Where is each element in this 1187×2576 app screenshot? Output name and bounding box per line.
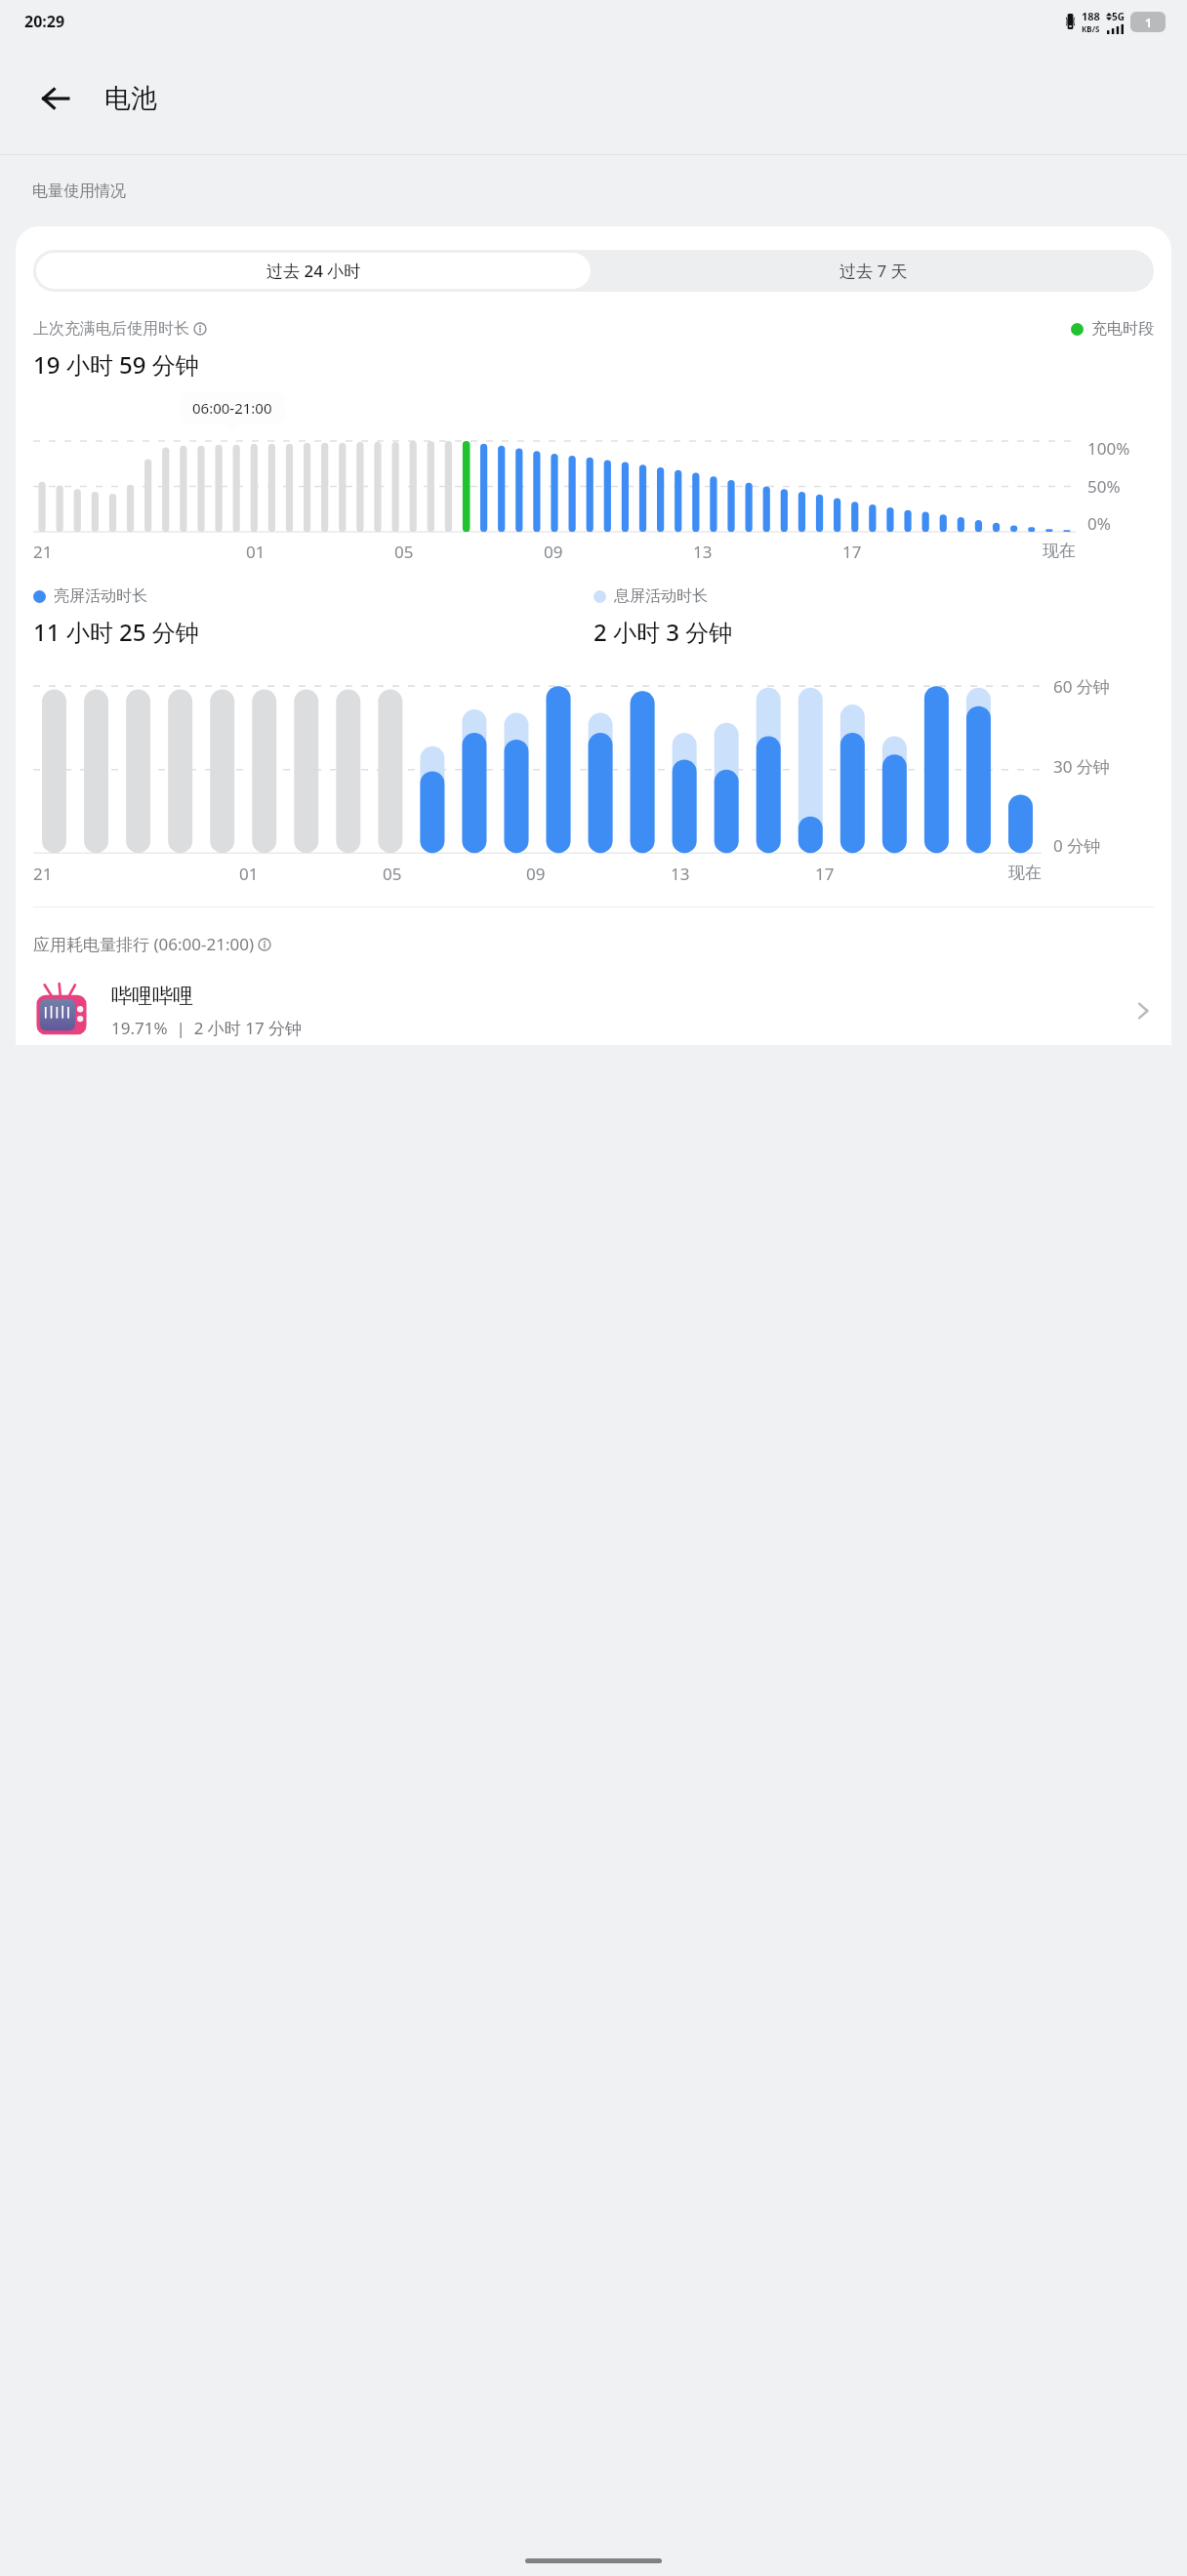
staticText: 现在 (1043, 541, 1076, 561)
staticText: 13 (693, 541, 713, 563)
button[interactable]: 过去 24 小时 (36, 253, 591, 289)
staticText: 应用耗电量排行 (06:00-21:00) (33, 933, 254, 955)
staticText: 19 小时 59 分钟 (33, 348, 199, 381)
staticText: 上次充满电后使用时长 (33, 319, 189, 339)
staticText: 0 分钟 (1053, 834, 1101, 857)
staticText: 过去 7 天 (839, 260, 908, 282)
button[interactable]: Back (27, 70, 84, 127)
staticText: 哔哩哔哩 (111, 984, 193, 1009)
staticText: 21 (33, 541, 53, 563)
staticText: 2 小时 3 分钟 (593, 616, 733, 648)
staticText: 30 分钟 (1053, 755, 1110, 778)
staticText: 5G (1112, 10, 1125, 23)
staticText: 电量使用情况 (32, 181, 126, 201)
staticText: 09 (544, 541, 563, 563)
staticText: 05 (383, 863, 402, 885)
staticText: 50% (1087, 475, 1121, 498)
staticText: 17 (815, 863, 835, 885)
staticText: 0% (1087, 512, 1111, 535)
staticText: 亮屏活动时长 (54, 586, 147, 606)
staticText: 11 小时 25 分钟 (33, 616, 199, 648)
staticText: 息屏活动时长 (614, 586, 708, 606)
staticText: 21 (33, 863, 53, 885)
staticText: 1 (1145, 15, 1152, 30)
staticText: 188 (1082, 9, 1100, 23)
staticText: 06:00-21:00 (192, 398, 272, 418)
staticText: 09 (526, 863, 546, 885)
button[interactable]: 过去 7 天 (593, 250, 1154, 292)
staticText: KB/S (1082, 23, 1100, 34)
staticText: 现在 (1008, 863, 1042, 883)
staticText: 充电时段 (1091, 319, 1154, 339)
staticText: 电池 (104, 82, 157, 115)
staticText: 60 分钟 (1053, 675, 1110, 698)
staticText: 17 (842, 541, 862, 563)
staticText: 13 (671, 863, 690, 885)
staticText: 01 (239, 863, 259, 885)
staticText: 01 (246, 541, 266, 563)
staticText: 过去 24 小时 (266, 260, 361, 282)
staticText: 05 (394, 541, 414, 563)
staticText: 20:29 (24, 11, 65, 32)
button[interactable]: 哔哩哔哩 (16, 977, 1171, 1045)
staticText: 100% (1087, 437, 1130, 460)
staticText: 19.71% | 2 小时 17 分钟 (111, 1017, 303, 1039)
